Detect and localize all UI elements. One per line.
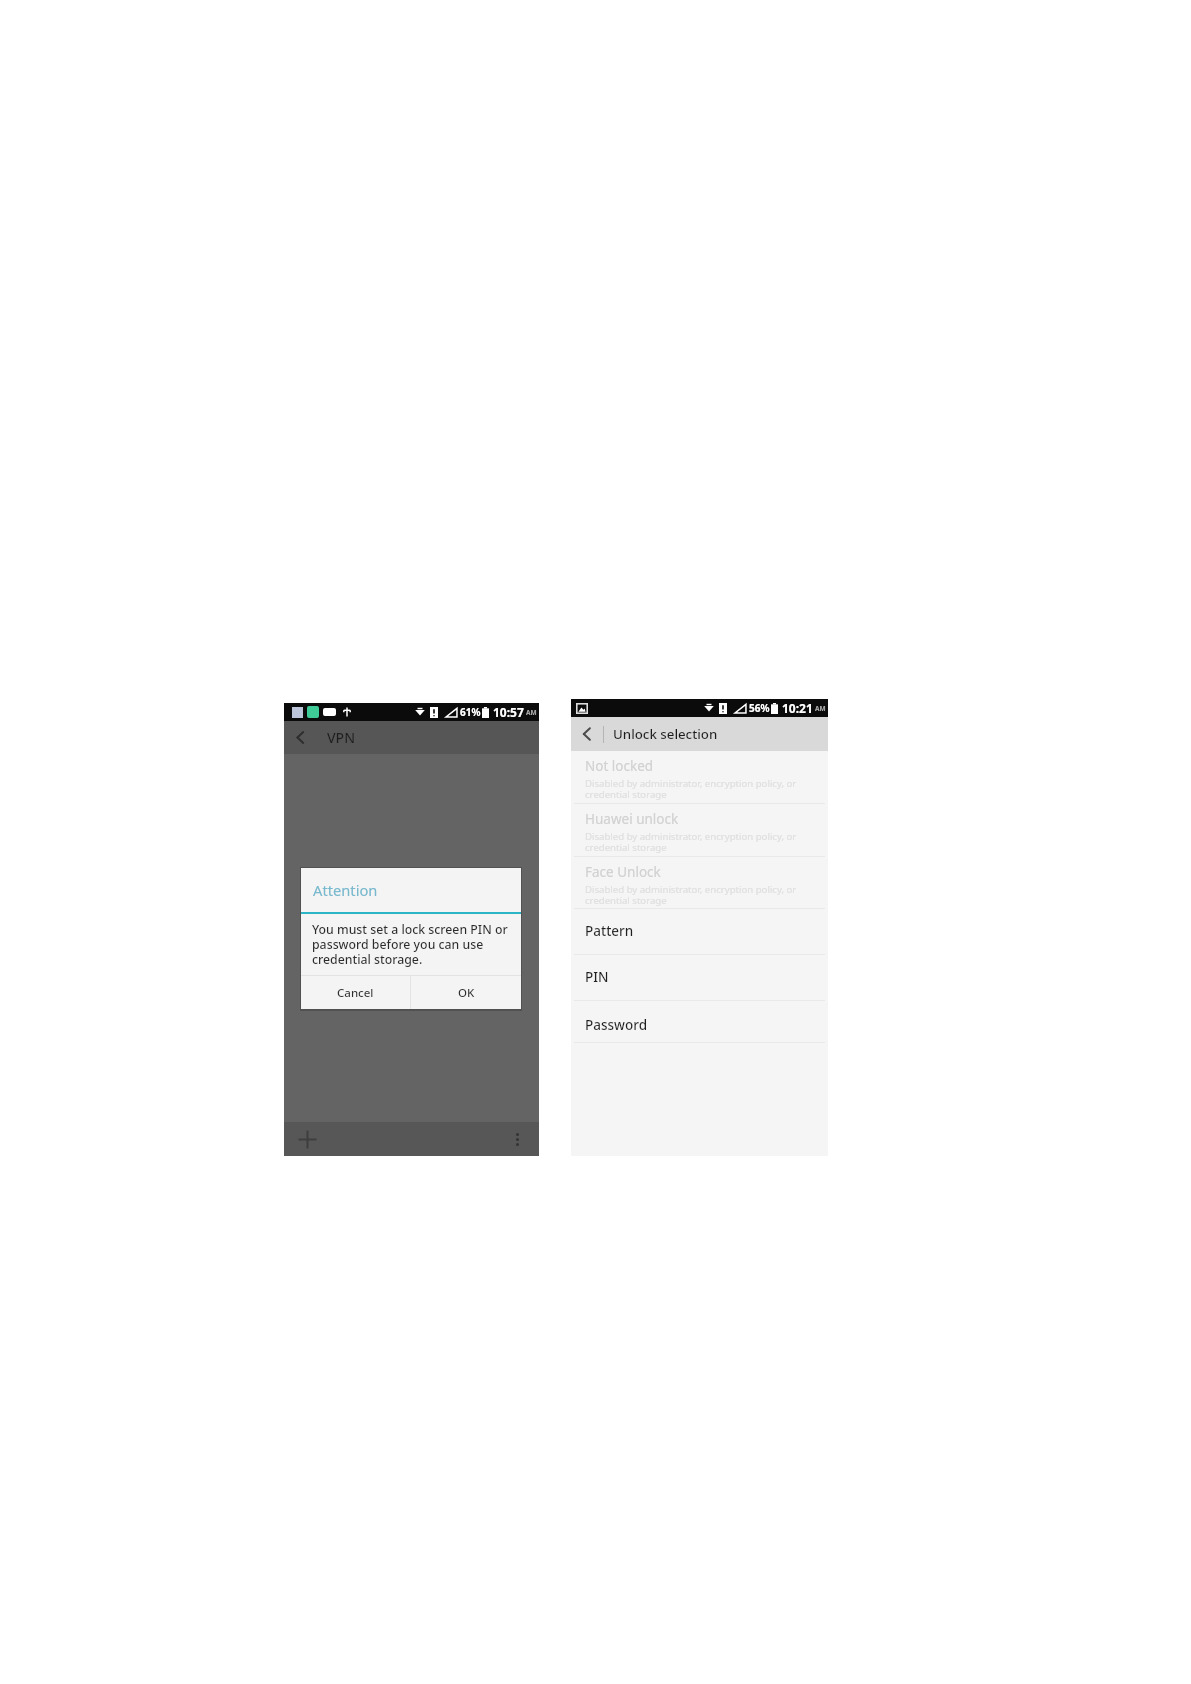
staticText: Disabled by administrator, encryption po… bbox=[585, 883, 797, 907]
staticText: OK bbox=[458, 985, 475, 1001]
button[interactable]: More options bbox=[507, 1122, 527, 1156]
staticText: AM bbox=[815, 704, 826, 713]
button[interactable]: Back bbox=[571, 717, 828, 751]
button[interactable]: Back bbox=[284, 721, 317, 754]
button[interactable]: OK bbox=[411, 976, 521, 1009]
staticText: 10:21 bbox=[782, 700, 813, 716]
staticText: Pattern bbox=[585, 922, 634, 940]
staticText: PIN bbox=[585, 968, 609, 986]
staticText: You must set a lock screen PIN or passwo… bbox=[312, 921, 508, 967]
button[interactable]: Huawei unlock bbox=[571, 804, 828, 856]
staticText: Attention bbox=[313, 880, 378, 900]
staticText: VPN bbox=[327, 728, 356, 747]
button[interactable]: Back bbox=[284, 721, 539, 754]
button[interactable]: PIN bbox=[571, 955, 828, 1000]
button[interactable]: Face Unlock bbox=[571, 857, 828, 908]
staticText: Disabled by administrator, encryption po… bbox=[585, 830, 797, 854]
button[interactable]: Add VPN bbox=[292, 1122, 322, 1156]
staticText: Not locked bbox=[585, 757, 654, 775]
staticText: Unlock selection bbox=[613, 725, 718, 743]
staticText: Huawei unlock bbox=[585, 810, 679, 828]
staticText: 61% bbox=[460, 705, 481, 719]
staticText: 56% bbox=[749, 701, 770, 715]
staticText: Disabled by administrator, encryption po… bbox=[585, 777, 797, 801]
staticText: Face Unlock bbox=[585, 863, 661, 881]
staticText: Cancel bbox=[337, 985, 374, 1001]
staticText: 10:57 bbox=[493, 704, 524, 720]
button[interactable]: Password bbox=[571, 1001, 828, 1042]
staticText: AM bbox=[526, 708, 537, 717]
button[interactable]: Pattern bbox=[571, 909, 828, 954]
button[interactable]: Back bbox=[571, 717, 603, 751]
staticText: Password bbox=[585, 1016, 648, 1034]
button[interactable]: Cancel bbox=[301, 976, 410, 1009]
button[interactable]: Not locked bbox=[571, 751, 828, 803]
